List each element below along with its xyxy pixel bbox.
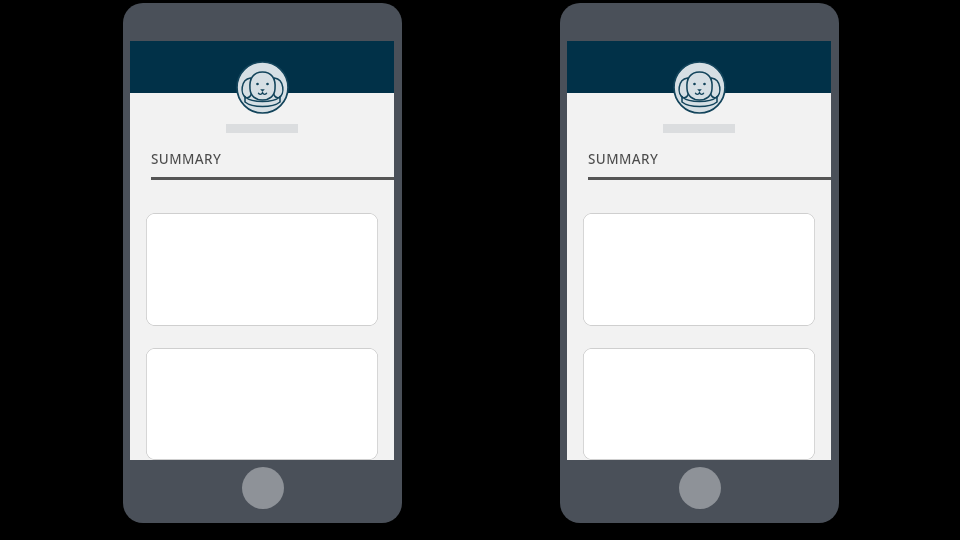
button[interactable]: SUMMARY bbox=[588, 150, 831, 180]
staticText: SUMMARY bbox=[588, 150, 659, 168]
button[interactable]: Home bbox=[242, 467, 284, 509]
staticText: SUMMARY bbox=[151, 150, 222, 168]
button[interactable]: SUMMARY bbox=[151, 150, 394, 180]
button[interactable]: Pet profile photo bbox=[673, 61, 726, 114]
button[interactable]: Pet profile photo bbox=[236, 61, 289, 114]
button[interactable] bbox=[583, 348, 815, 460]
button[interactable] bbox=[583, 213, 815, 326]
button[interactable] bbox=[146, 348, 378, 460]
button[interactable]: Home bbox=[679, 467, 721, 509]
button[interactable] bbox=[146, 213, 378, 326]
